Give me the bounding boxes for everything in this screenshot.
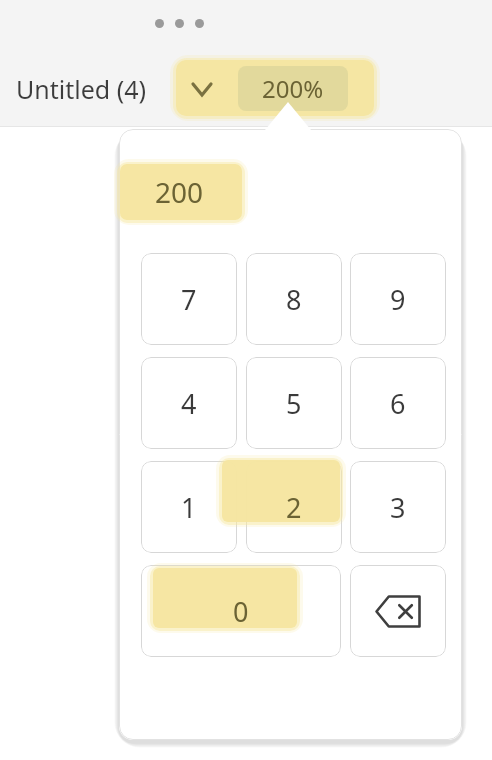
staticText: 3 <box>390 489 406 526</box>
staticText: 0 <box>233 593 249 630</box>
button[interactable]: 2 <box>246 461 342 553</box>
button[interactable]: Zero <box>141 565 341 657</box>
staticText: 200 <box>155 173 204 211</box>
button[interactable]: Untitled (4) <box>16 66 176 112</box>
staticText: 6 <box>390 385 406 422</box>
button[interactable]: 4 <box>141 357 237 449</box>
button[interactable]: 3 <box>350 461 446 553</box>
button[interactable]: 8 <box>246 253 342 345</box>
button[interactable]: 0 <box>141 565 341 657</box>
button[interactable]: Expand <box>182 68 222 110</box>
staticText: 200% <box>262 72 324 105</box>
staticText: 4 <box>181 385 197 422</box>
staticText: 2 <box>286 489 302 526</box>
button[interactable]: 200 <box>140 162 440 222</box>
staticText: 1 <box>181 489 197 526</box>
staticText: 5 <box>286 385 302 422</box>
button[interactable]: Backspace <box>350 565 446 657</box>
button[interactable]: 200% <box>238 66 348 111</box>
button[interactable]: 5 <box>246 357 342 449</box>
button[interactable]: 7 <box>141 253 237 345</box>
button[interactable]: More options <box>155 19 204 28</box>
button[interactable]: 1 <box>141 461 237 553</box>
button[interactable]: 9 <box>350 253 446 345</box>
staticText: 9 <box>390 281 406 318</box>
staticText: Untitled (4) <box>16 72 146 106</box>
staticText: 7 <box>181 281 197 318</box>
button[interactable]: 6 <box>350 357 446 449</box>
staticText: 8 <box>286 281 302 318</box>
button[interactable]: 2 <box>246 461 342 553</box>
